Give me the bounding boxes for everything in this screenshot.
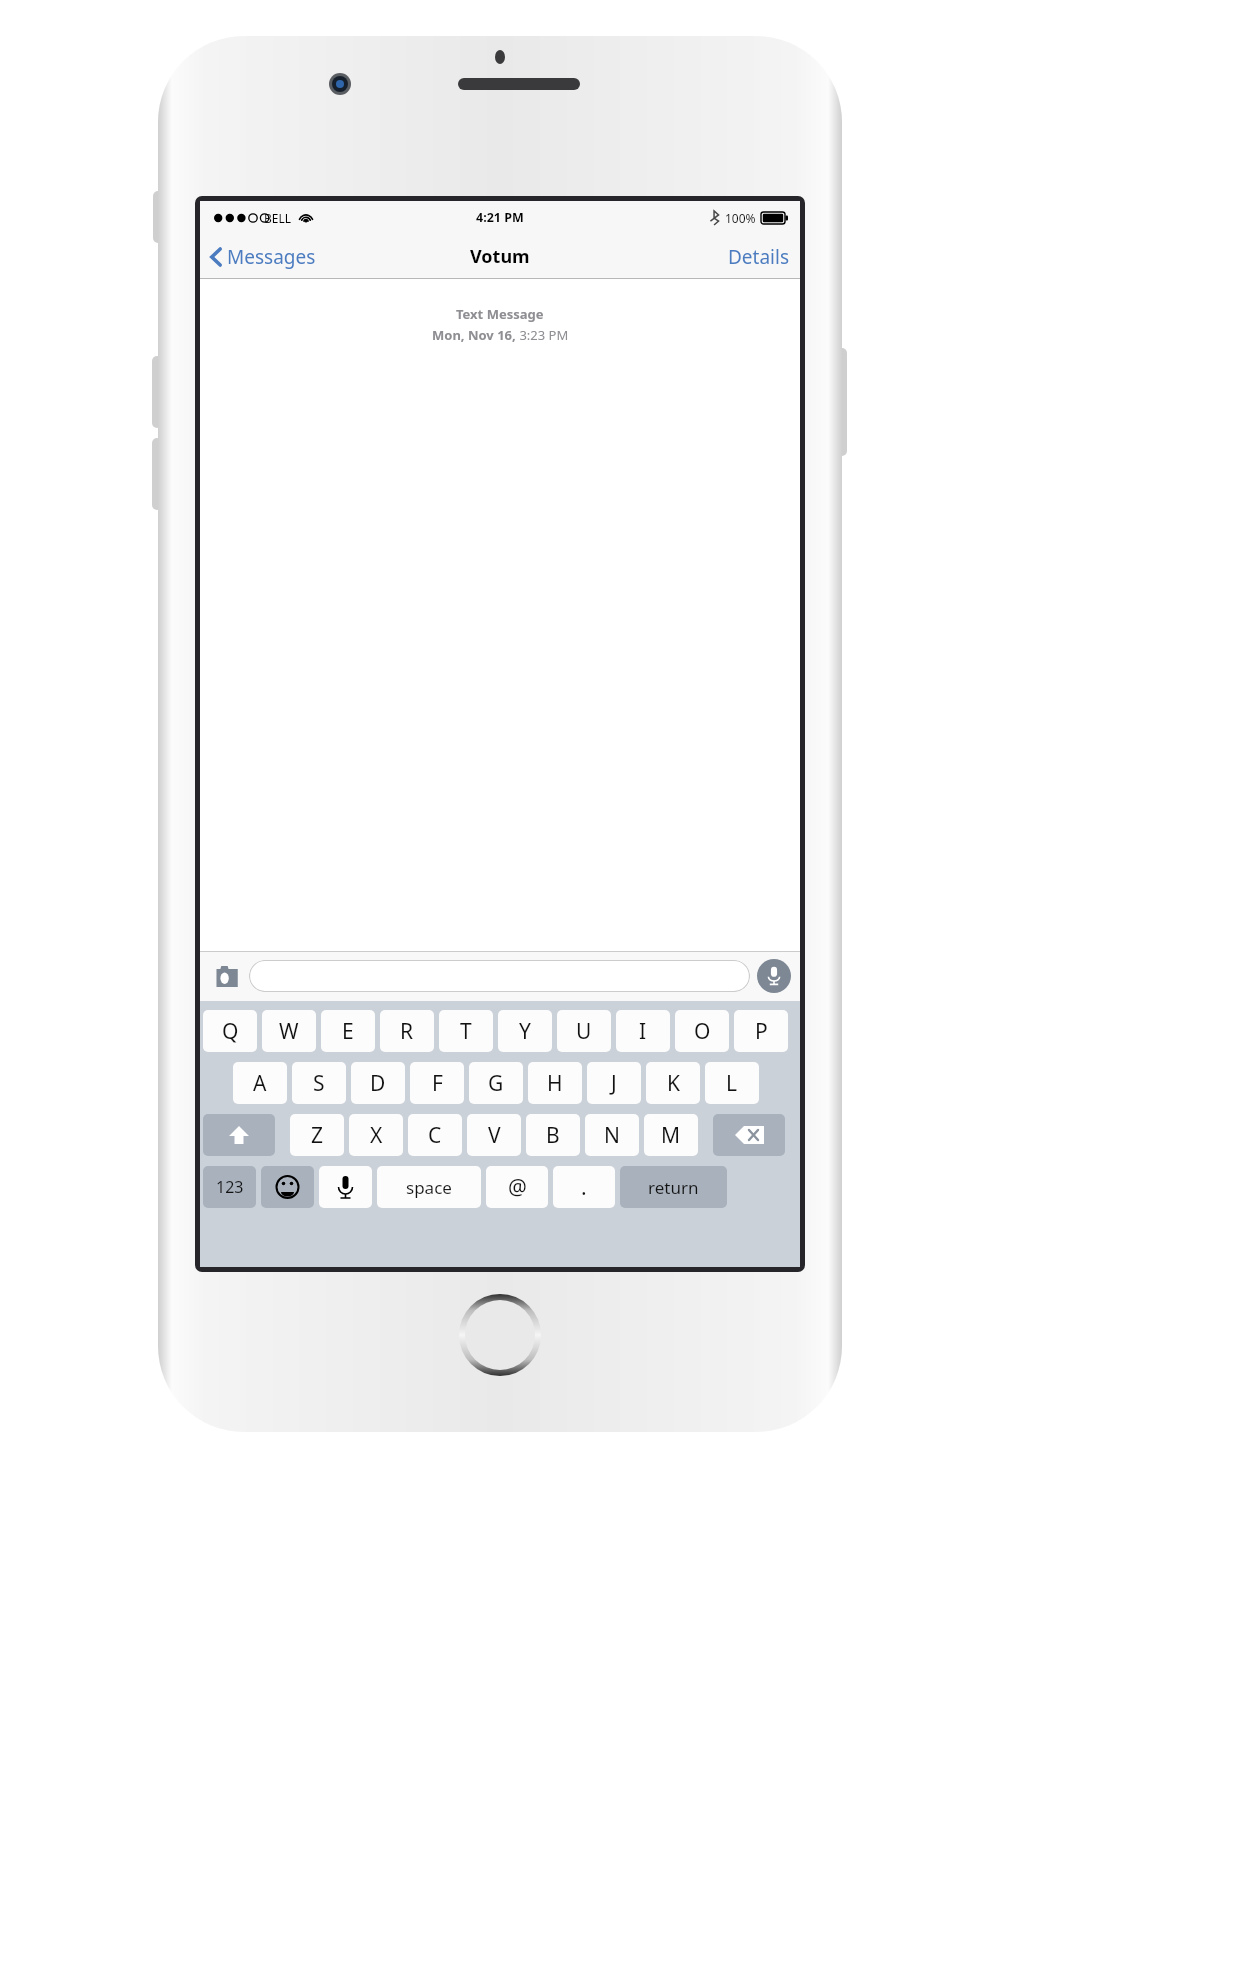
staticText: H [547, 1069, 563, 1098]
button[interactable]: M [644, 1114, 698, 1156]
staticText: Y [519, 1017, 531, 1046]
button[interactable]: E [321, 1010, 375, 1052]
staticText: . [581, 1173, 587, 1202]
button[interactable]: A [233, 1062, 287, 1104]
button[interactable]: W [262, 1010, 316, 1052]
button[interactable]: space [377, 1166, 481, 1208]
staticText: W [279, 1017, 299, 1046]
button[interactable]: Backspace [713, 1114, 785, 1156]
button[interactable]: H [528, 1062, 582, 1104]
staticText: O [694, 1017, 711, 1046]
staticText: 100% [725, 210, 756, 226]
staticText: I [639, 1017, 647, 1046]
button[interactable]: Q [203, 1010, 257, 1052]
staticText: B [546, 1121, 560, 1150]
staticText: J [611, 1069, 617, 1098]
staticText: Mon, Nov 16, [432, 326, 516, 344]
button[interactable]: N [585, 1114, 639, 1156]
staticText: K [667, 1069, 680, 1098]
button[interactable]: 123 [203, 1166, 256, 1208]
staticText: 3:23 PM [516, 326, 569, 344]
staticText: Messages [227, 244, 316, 270]
button[interactable]: V [467, 1114, 521, 1156]
button[interactable]: Home [459, 1294, 541, 1376]
button[interactable]: Details [718, 238, 800, 276]
staticText: G [488, 1069, 504, 1098]
button[interactable]: C [408, 1114, 462, 1156]
button[interactable]: I [616, 1010, 670, 1052]
button[interactable]: . [553, 1166, 615, 1208]
button[interactable]: O [675, 1010, 729, 1052]
staticText: R [400, 1017, 414, 1046]
button[interactable]: U [557, 1010, 611, 1052]
button[interactable]: Dictate [319, 1166, 372, 1208]
staticText: 123 [216, 1176, 244, 1198]
button[interactable]: Z [290, 1114, 344, 1156]
button[interactable]: S [292, 1062, 346, 1104]
button[interactable]: G [469, 1062, 523, 1104]
button[interactable]: Dictation [757, 959, 791, 993]
button[interactable]: F [410, 1062, 464, 1104]
button[interactable]: K [646, 1062, 700, 1104]
staticText: U [576, 1017, 592, 1046]
staticText: P [755, 1017, 768, 1046]
button[interactable]: return [620, 1166, 727, 1208]
staticText: N [604, 1121, 620, 1150]
button[interactable]: L [705, 1062, 759, 1104]
button[interactable]: P [734, 1010, 788, 1052]
button[interactable]: Y [498, 1010, 552, 1052]
staticText: Q [222, 1017, 239, 1046]
staticText: @ [508, 1173, 527, 1202]
button[interactable] [249, 960, 750, 992]
staticText: Text Message [456, 305, 544, 323]
staticText: return [648, 1176, 699, 1199]
staticText: L [726, 1069, 738, 1098]
staticText: Z [311, 1121, 324, 1150]
button[interactable]: B [526, 1114, 580, 1156]
button[interactable]: Emoji [261, 1166, 314, 1208]
staticText: space [406, 1176, 452, 1199]
button[interactable]: Shift [203, 1114, 275, 1156]
staticText: X [370, 1121, 383, 1150]
button[interactable]: D [351, 1062, 405, 1104]
staticText: M [661, 1121, 681, 1150]
staticText: E [342, 1017, 354, 1046]
button[interactable]: Camera [209, 959, 243, 993]
button[interactable]: R [380, 1010, 434, 1052]
staticText: F [432, 1069, 443, 1098]
staticText: BELL [264, 210, 292, 226]
staticText: D [370, 1069, 386, 1098]
staticText: C [428, 1121, 442, 1150]
staticText: S [313, 1069, 325, 1098]
staticText: A [253, 1069, 267, 1098]
staticText: 4:21 PM [476, 209, 524, 226]
button[interactable]: X [349, 1114, 403, 1156]
staticText: V [488, 1121, 501, 1150]
button[interactable]: Messages [200, 238, 324, 276]
button[interactable]: J [587, 1062, 641, 1104]
staticText: Details [728, 244, 790, 270]
button[interactable]: T [439, 1010, 493, 1052]
staticText: T [460, 1017, 472, 1046]
staticText: Votum [470, 244, 530, 269]
button[interactable]: @ [486, 1166, 548, 1208]
